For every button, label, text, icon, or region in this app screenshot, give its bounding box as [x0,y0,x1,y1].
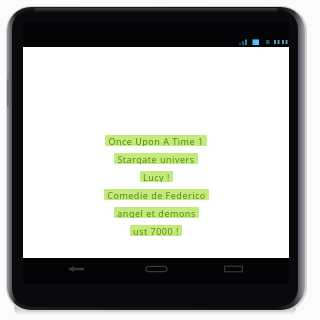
button[interactable]: Home [134,258,178,281]
staticText: Once Upon A Time 1 [108,135,204,146]
button[interactable]: Once Upon A Time 1 [108,135,204,146]
staticText: Stargate univers [117,153,195,164]
button[interactable]: Stargate univers [117,153,195,164]
button[interactable]: ust 7000 ! [133,225,179,236]
staticText: angel et demons [117,207,196,218]
button[interactable]: Lucy ! [143,171,170,182]
button[interactable]: angel et demons [117,207,196,218]
staticText: ust 7000 ! [133,225,179,236]
other: Status icons [237,39,289,45]
staticText: Comedie de Federico [107,189,206,200]
button[interactable]: Back [54,258,98,281]
button[interactable]: Comedie de Federico [107,189,206,200]
button[interactable]: Recent apps [211,258,255,281]
staticText: Lucy ! [143,171,170,182]
